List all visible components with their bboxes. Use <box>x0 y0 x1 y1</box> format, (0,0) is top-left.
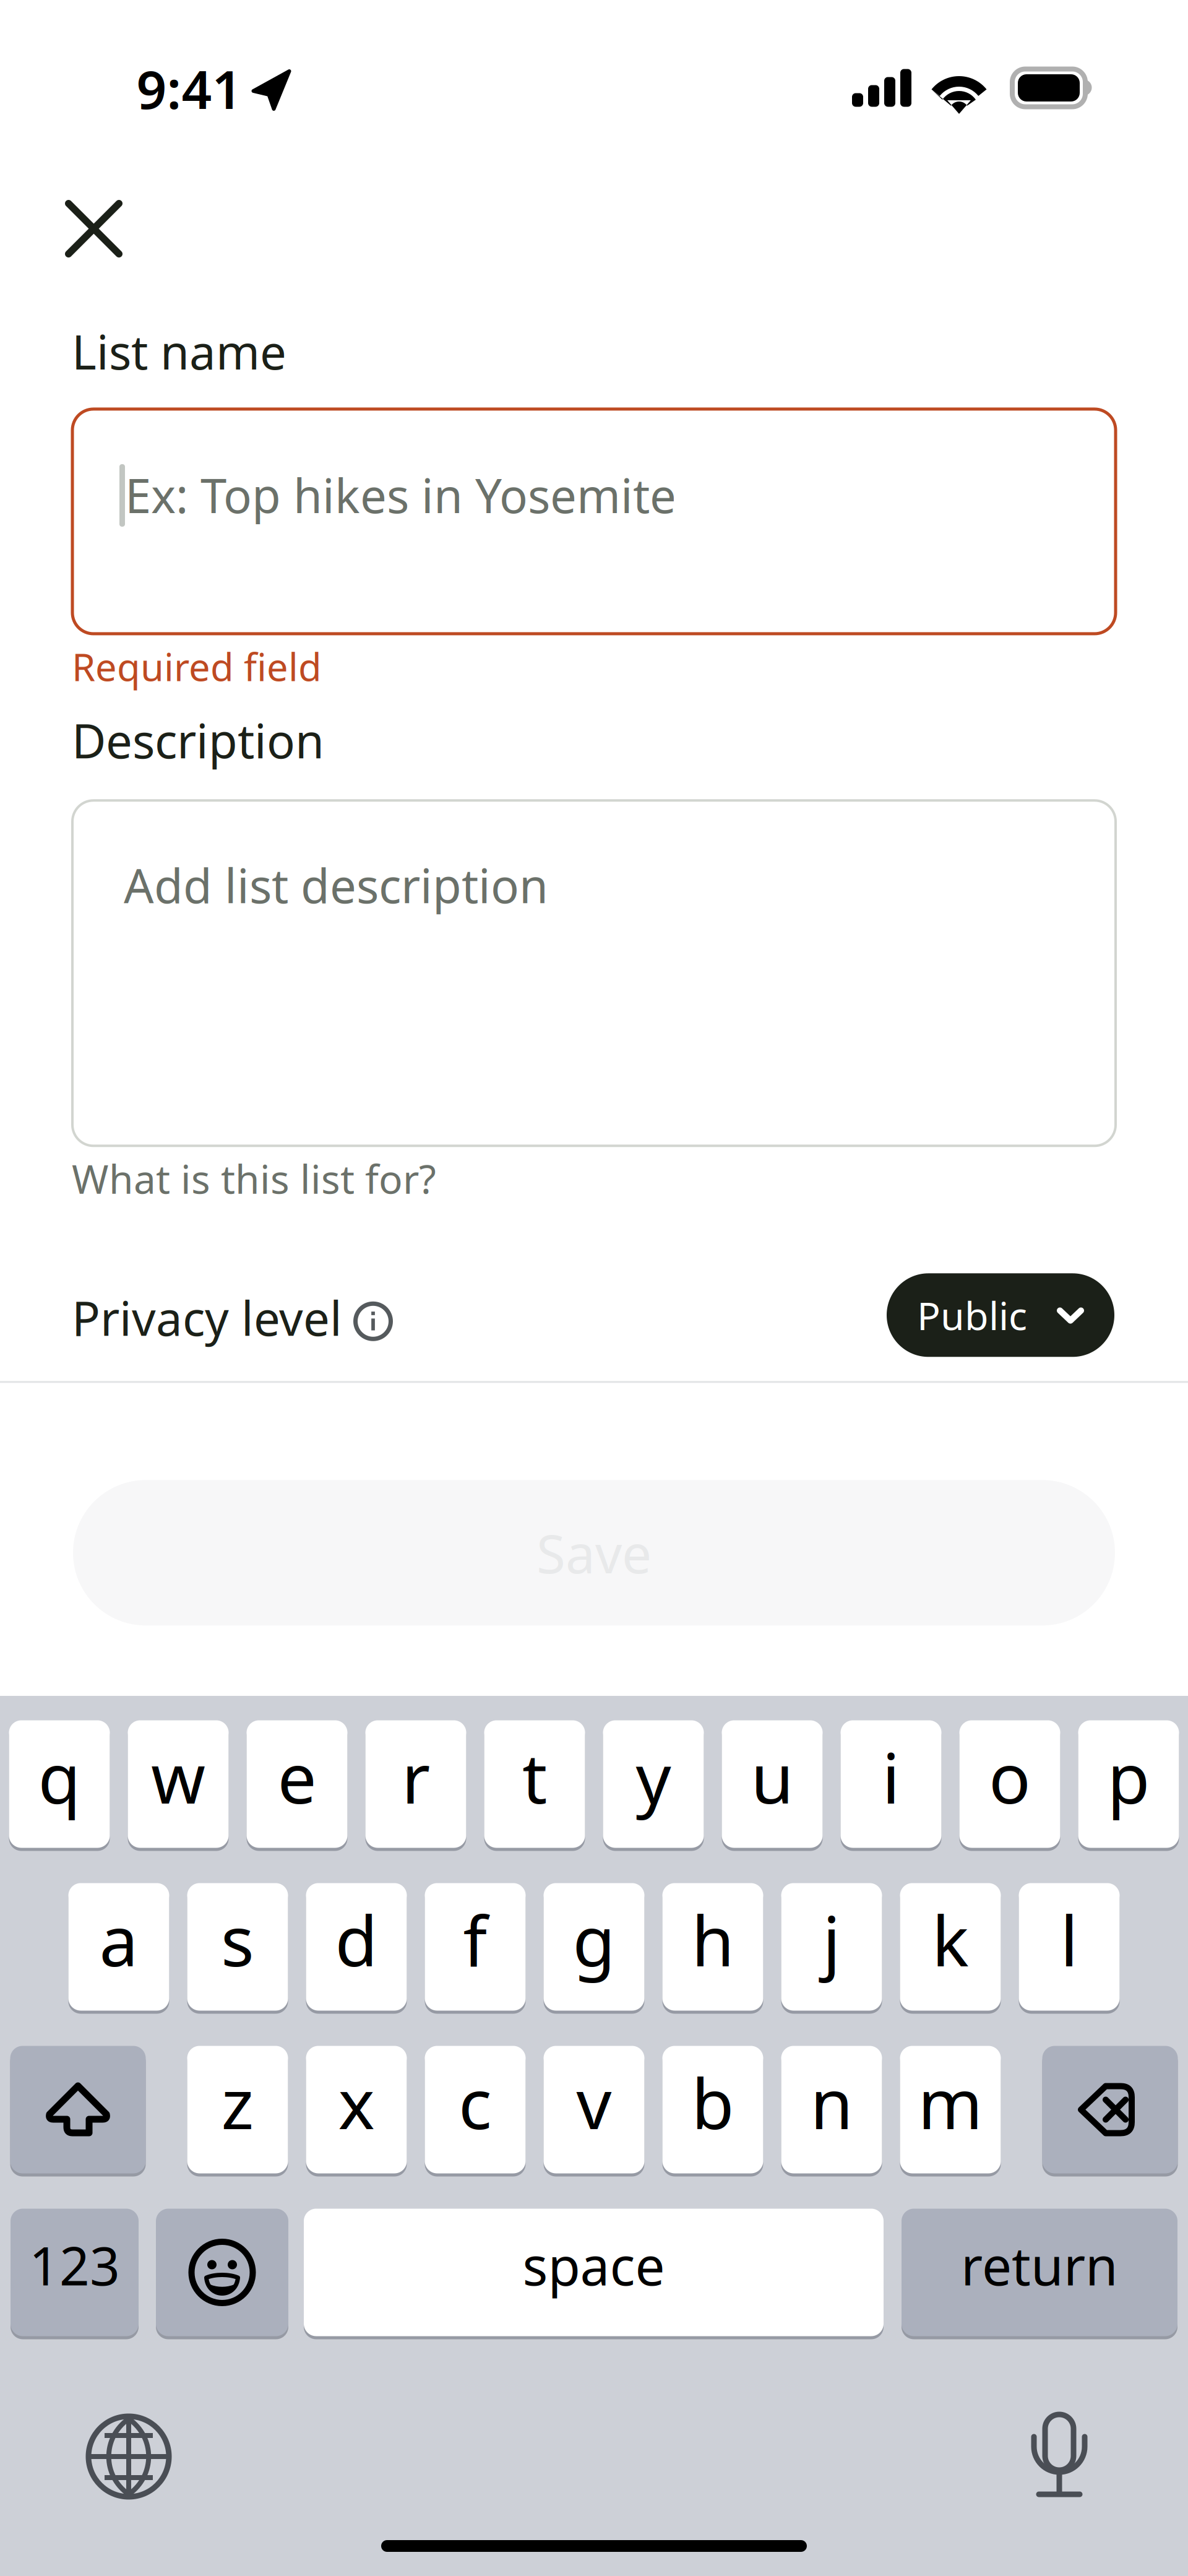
staticText: w <box>151 1731 205 1823</box>
staticText: Save <box>536 1518 652 1588</box>
staticText: p <box>1107 1731 1150 1823</box>
staticText: Public <box>917 1289 1027 1341</box>
button[interactable]: Save <box>0 1480 1188 1626</box>
button[interactable]: Public <box>887 1273 1114 1357</box>
button[interactable]: a <box>68 1882 169 2012</box>
button[interactable]: h <box>662 1882 763 2012</box>
staticText: u <box>751 1731 794 1823</box>
button[interactable]: n <box>781 2044 882 2175</box>
button[interactable]: k <box>900 1882 1001 2012</box>
button[interactable]: c <box>425 2044 526 2175</box>
button[interactable]: return <box>902 2207 1177 2338</box>
button[interactable]: p <box>1078 1719 1179 1849</box>
button[interactable]: u <box>722 1719 823 1849</box>
button[interactable]: About privacy levels <box>342 1292 403 1351</box>
button[interactable]: Close <box>0 184 150 274</box>
staticText: Ex: Top hikes in Yosemite <box>125 464 676 526</box>
staticText: b <box>691 2056 734 2148</box>
staticText: n <box>810 2056 853 2148</box>
staticText: Description <box>72 709 324 771</box>
button[interactable]: v <box>544 2044 644 2175</box>
staticText: s <box>221 1893 254 1985</box>
button[interactable]: e <box>247 1719 347 1849</box>
staticText: r <box>402 1731 430 1823</box>
button[interactable]: q <box>9 1719 110 1849</box>
button[interactable]: r <box>365 1719 466 1849</box>
staticText: l <box>1060 1893 1078 1985</box>
button[interactable]: y <box>603 1719 704 1849</box>
button[interactable]: w <box>128 1719 229 1849</box>
button[interactable]: Next keyboard <box>88 2416 169 2497</box>
button[interactable]: j <box>781 1882 882 2012</box>
staticText: a <box>99 1893 138 1985</box>
button[interactable]: Emoji <box>156 2207 288 2338</box>
staticText: d <box>335 1893 378 1985</box>
button[interactable]: d <box>306 1882 407 2012</box>
button[interactable]: s <box>187 1882 288 2012</box>
staticText: k <box>932 1893 969 1985</box>
staticText: c <box>458 2056 492 2148</box>
staticText: h <box>691 1893 734 1985</box>
button[interactable]: t <box>484 1719 585 1849</box>
staticText: 123 <box>29 2230 120 2300</box>
staticText: Add list description <box>124 854 548 916</box>
staticText: What is this list for? <box>72 1152 436 1205</box>
staticText: y <box>636 1731 671 1823</box>
button[interactable]: x <box>306 2044 407 2175</box>
staticText: j <box>823 1893 841 1985</box>
staticText: e <box>278 1731 316 1823</box>
staticText: 9:41 <box>136 53 242 124</box>
button[interactable]: Dictation <box>1031 2414 1088 2499</box>
button[interactable]: 123 <box>11 2207 139 2338</box>
button[interactable]: o <box>959 1719 1060 1849</box>
button[interactable]: b <box>662 2044 763 2175</box>
staticText: v <box>576 2056 612 2148</box>
button[interactable]: space <box>304 2207 884 2338</box>
button[interactable]: g <box>544 1882 644 2012</box>
staticText: g <box>573 1893 615 1985</box>
button[interactable]: m <box>900 2044 1001 2175</box>
staticText: q <box>38 1731 81 1823</box>
staticText: i <box>882 1731 900 1823</box>
staticText: Required field <box>72 641 322 692</box>
staticText: x <box>338 2056 375 2148</box>
button[interactable]: l <box>1019 1882 1120 2012</box>
button[interactable]: i <box>841 1719 941 1849</box>
staticText: f <box>463 1893 487 1985</box>
button[interactable]: Delete <box>1042 2044 1178 2175</box>
staticText: z <box>221 2056 254 2148</box>
staticText: t <box>522 1731 547 1823</box>
button[interactable]: f <box>425 1882 526 2012</box>
staticText: m <box>918 2056 983 2148</box>
button[interactable]: z <box>187 2044 288 2175</box>
staticText: Privacy level <box>72 1286 342 1349</box>
button[interactable]: Shift <box>10 2044 146 2175</box>
staticText: o <box>989 1731 1031 1823</box>
staticText: List name <box>72 320 286 382</box>
staticText: space <box>523 2230 665 2300</box>
staticText: return <box>961 2230 1118 2300</box>
